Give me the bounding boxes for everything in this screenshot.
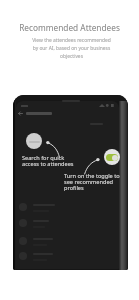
button[interactable] (19, 219, 114, 231)
button[interactable] (19, 203, 114, 215)
button[interactable] (19, 237, 114, 249)
button[interactable]: Search (26, 133, 42, 149)
button[interactable] (19, 252, 114, 264)
staticText: Search for quick access to attendees (22, 154, 74, 168)
button[interactable]: Back (18, 111, 23, 116)
staticText: Recommended Attendees (19, 22, 120, 33)
button[interactable]: Toggle recommended profiles (104, 149, 120, 165)
staticText: View the attendees recommended by our AI… (32, 37, 111, 60)
staticText: Turn on the toggle to see recommended pr… (64, 172, 120, 192)
